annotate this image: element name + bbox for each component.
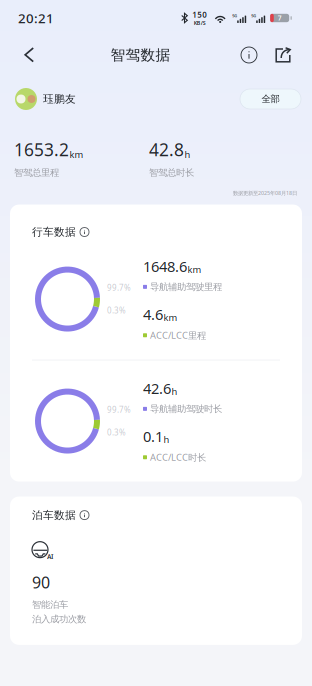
button[interactable]: Share <box>266 36 300 74</box>
button[interactable]: Info <box>232 36 266 74</box>
staticText: 智能泊车 <box>32 599 68 610</box>
staticText: 7 <box>278 14 282 22</box>
staticText: 珏鹏友 <box>43 92 76 105</box>
staticText: 智驾总时长 <box>149 167 194 178</box>
staticText: h <box>171 385 177 398</box>
staticText: ACC/LCC时长 <box>150 451 206 463</box>
staticText: h <box>184 148 190 160</box>
staticText: 4.6 <box>143 305 163 324</box>
staticText: 99.7% <box>107 404 131 415</box>
staticText: AI <box>47 552 53 561</box>
staticText: h <box>163 433 169 446</box>
staticText: 0.1 <box>143 427 163 446</box>
staticText: km <box>187 263 201 276</box>
staticText: 智驾总里程 <box>14 167 59 178</box>
staticText: 行车数据 <box>32 225 76 239</box>
staticText: km <box>163 311 177 324</box>
button[interactable]: 珏鹏友 <box>15 88 76 110</box>
staticText: 智驾数据 <box>110 46 170 64</box>
staticText: 99.7% <box>107 282 131 293</box>
staticText: 5G <box>251 13 256 18</box>
button[interactable]: Back <box>10 36 49 74</box>
staticText: 20:21 <box>18 9 54 27</box>
button[interactable]: 全部 <box>240 89 301 109</box>
staticText: 1648.6 <box>143 257 187 276</box>
staticText: 42.8 <box>149 138 184 161</box>
staticText: 0.3% <box>107 305 126 316</box>
staticText: 0.3% <box>107 427 126 438</box>
staticText: KB/S <box>194 19 206 27</box>
staticText: 1653.2 <box>14 138 69 161</box>
staticText: 90 <box>32 572 50 593</box>
staticText: 150 <box>192 9 207 20</box>
staticText: 全部 <box>261 93 279 105</box>
staticText: 42.6 <box>143 379 171 398</box>
staticText: 泊车数据 <box>32 509 76 522</box>
staticText: 数据更新至2025年08月18日 <box>233 189 297 197</box>
staticText: 导航辅助驾驶里程 <box>150 281 222 293</box>
staticText: km <box>69 148 83 160</box>
staticText: 泊入成功次数 <box>32 613 86 625</box>
staticText: 导航辅助驾驶时长 <box>150 403 222 415</box>
staticText: 5G <box>232 13 237 18</box>
staticText: ACC/LCC里程 <box>150 329 206 341</box>
